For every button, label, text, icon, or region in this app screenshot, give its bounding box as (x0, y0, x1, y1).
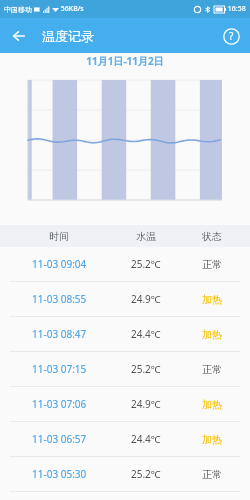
staticText: 加热 (202, 433, 222, 446)
staticText: 16:58 (226, 4, 246, 14)
staticText: 24.4℃ (131, 327, 161, 341)
staticText: 时间 (49, 230, 69, 243)
staticText: 11-03 09:04 (32, 257, 87, 271)
staticText: 24.9℃ (131, 292, 161, 306)
staticText: 11月1日-11月2日 (86, 54, 164, 68)
button[interactable]: 11-03 06:57 (0, 422, 250, 457)
staticText: 水温 (136, 230, 156, 243)
staticText: 正常 (202, 468, 222, 481)
staticText: 24.4℃ (131, 432, 161, 446)
staticText: 中国移动 (4, 5, 32, 14)
staticText: 56KB/s (59, 4, 84, 14)
staticText: 状态 (202, 230, 222, 243)
button[interactable]: 11-03 08:55 (0, 282, 250, 317)
staticText: 正常 (202, 258, 222, 271)
staticText: 25.2℃ (131, 257, 161, 271)
button[interactable]: 11-03 07:06 (0, 387, 250, 422)
staticText: 11-03 07:15 (32, 362, 87, 376)
staticText: 正常 (202, 363, 222, 376)
staticText: 11-03 05:30 (32, 467, 87, 481)
staticText: 24.9℃ (131, 397, 161, 411)
staticText: 11-03 08:47 (32, 327, 87, 341)
staticText: 25.2℃ (131, 467, 161, 481)
staticText: 11-03 07:06 (32, 397, 87, 411)
staticText: ? (229, 29, 234, 43)
staticText: 25.2℃ (131, 362, 161, 376)
button[interactable]: 11-03 09:04 (0, 247, 250, 282)
staticText: 11-03 08:55 (32, 292, 87, 306)
button[interactable]: Back (8, 25, 30, 47)
staticText: 11-03 06:57 (32, 432, 87, 446)
button[interactable]: Help (220, 25, 242, 47)
button[interactable]: 11-03 07:15 (0, 352, 250, 387)
button[interactable]: 11-03 08:47 (0, 317, 250, 352)
staticText: 加热 (202, 293, 222, 306)
staticText: 温度记录 (42, 28, 94, 44)
staticText: 加热 (202, 328, 222, 341)
button[interactable]: 11-03 05:30 (0, 457, 250, 492)
staticText: 加热 (202, 398, 222, 411)
